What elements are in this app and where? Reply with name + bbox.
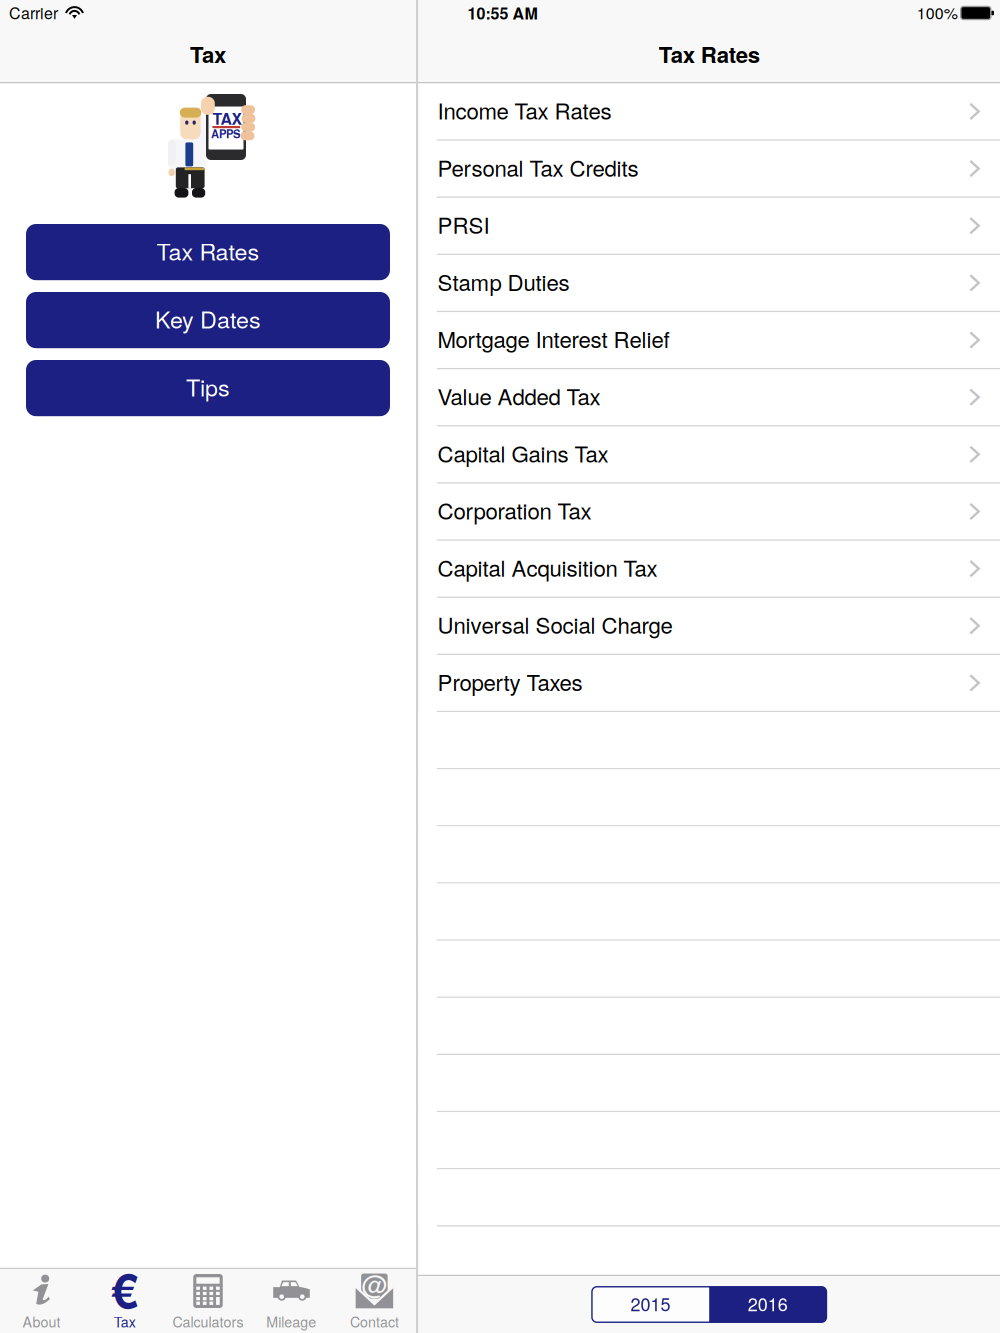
staticText: TAX [212, 107, 242, 130]
staticText: Tax [190, 38, 226, 70]
button[interactable]: 2016 [709, 1287, 826, 1322]
staticText: Key Dates [155, 302, 261, 335]
button[interactable]: Income Tax Rates [418, 83, 1000, 141]
staticText: Capital Gains Tax [437, 437, 608, 469]
button[interactable]: Property Taxes [418, 655, 1000, 712]
staticText: Capital Acquisition Tax [437, 551, 657, 583]
staticText: Tax Rates [156, 234, 259, 267]
button[interactable]: Key Dates [26, 292, 390, 348]
staticText: Tax [114, 1311, 136, 1331]
staticText: Calculators [172, 1311, 243, 1331]
button[interactable]: Corporation Tax [418, 483, 1000, 541]
staticText: 10:55 AM [467, 1, 537, 24]
staticText: About [23, 1311, 61, 1331]
staticText: Personal Tax Credits [437, 151, 638, 183]
staticText: 2015 [631, 1291, 671, 1316]
staticText: @ [361, 1264, 387, 1302]
staticText: Mortgage Interest Relief [437, 323, 669, 354]
button[interactable]: Capital Acquisition Tax [418, 541, 1000, 598]
staticText: Carrier [9, 1, 58, 24]
button[interactable]: 2015 [592, 1287, 709, 1322]
button[interactable]: Mortgage Interest Relief [418, 312, 1000, 369]
staticText: Corporation Tax [437, 494, 591, 526]
button[interactable]: Universal Social Charge [418, 598, 1000, 655]
button[interactable]: Personal Tax Credits [418, 141, 1000, 198]
staticText: APPS [211, 126, 240, 142]
button[interactable]: Tips [26, 360, 390, 416]
staticText: PRSI [437, 208, 489, 240]
button[interactable]: € [83, 1269, 166, 1333]
button[interactable]: Stamp Duties [418, 255, 1000, 312]
staticText: Contact [350, 1311, 399, 1331]
button[interactable]: Mileage [250, 1269, 333, 1333]
button[interactable]: PRSI [418, 198, 1000, 255]
button[interactable]: Tax Rates [26, 224, 390, 280]
button[interactable]: About [0, 1269, 83, 1333]
button[interactable]: Capital Gains Tax [418, 426, 1000, 483]
staticText: € [111, 1255, 138, 1323]
staticText: Income Tax Rates [437, 94, 611, 126]
staticText: 2016 [748, 1291, 788, 1316]
button[interactable]: @ [333, 1269, 416, 1333]
staticText: Stamp Duties [437, 265, 569, 297]
staticText: Property Taxes [437, 665, 582, 697]
button[interactable]: Value Added Tax [418, 369, 1000, 426]
staticText: Tips [186, 370, 230, 403]
staticText: Mileage [266, 1311, 316, 1331]
staticText: Value Added Tax [437, 380, 600, 412]
staticText: Universal Social Charge [437, 608, 672, 640]
staticText: 100% [917, 1, 958, 24]
button[interactable]: Calculators [166, 1269, 250, 1333]
staticText: Tax Rates [659, 38, 760, 70]
